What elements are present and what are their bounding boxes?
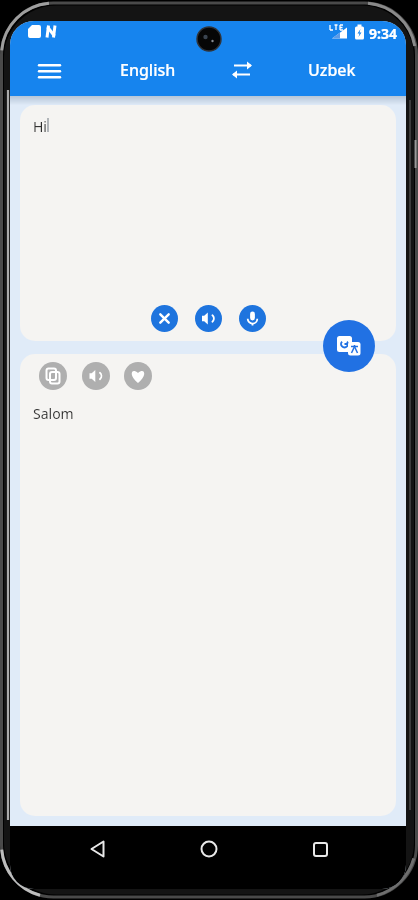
button[interactable] xyxy=(124,362,152,390)
staticText: 9:34 xyxy=(369,24,397,43)
button[interactable] xyxy=(323,320,375,372)
button[interactable] xyxy=(80,831,116,867)
button[interactable] xyxy=(39,362,67,390)
button[interactable] xyxy=(302,831,338,867)
button[interactable] xyxy=(239,305,266,332)
button[interactable]: English xyxy=(108,56,188,84)
button[interactable] xyxy=(82,362,110,390)
button[interactable] xyxy=(151,305,178,332)
button[interactable]: Uzbek xyxy=(298,56,366,84)
button[interactable] xyxy=(222,56,262,84)
button[interactable] xyxy=(195,305,222,332)
staticText: Salom xyxy=(33,404,74,423)
button[interactable] xyxy=(28,59,70,83)
staticText: Hi xyxy=(33,117,47,136)
staticText: Uzbek xyxy=(308,59,356,81)
button[interactable] xyxy=(191,831,227,867)
staticText: English xyxy=(120,59,176,81)
